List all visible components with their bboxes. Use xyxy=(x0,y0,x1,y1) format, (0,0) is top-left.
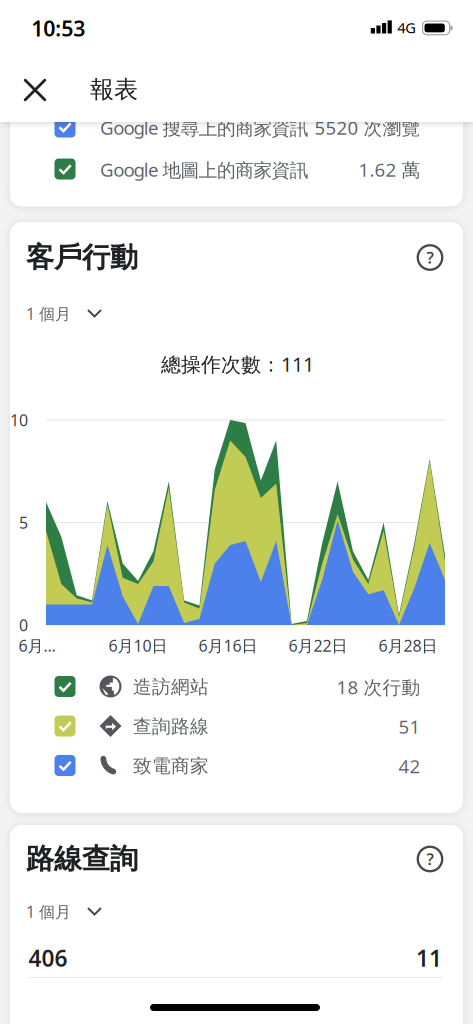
button[interactable]: 說明 xyxy=(415,242,445,272)
staticText: 6月... xyxy=(18,635,55,656)
button[interactable]: Google 地圖上的商家資訊 xyxy=(0,149,473,189)
staticText: 6月10日 xyxy=(108,635,167,656)
button[interactable]: 致電商家 xyxy=(0,745,473,785)
staticText: 4G xyxy=(397,18,416,37)
staticText: 10:53 xyxy=(31,14,85,42)
staticText: ? xyxy=(426,247,433,268)
staticText: 查詢路線 xyxy=(133,715,209,738)
button[interactable]: 選取期間 xyxy=(26,901,102,922)
button[interactable]: 說明 xyxy=(415,844,445,874)
button[interactable]: 關閉 xyxy=(20,75,50,105)
staticText: 5520 次瀏覽 xyxy=(314,115,420,140)
button[interactable]: 造訪網站 xyxy=(0,666,473,706)
staticText: 造訪網站 xyxy=(133,675,209,698)
staticText: 51 xyxy=(398,714,420,739)
staticText: 6月22日 xyxy=(288,635,347,656)
staticText: 6月28日 xyxy=(378,635,437,656)
button[interactable]: 查詢路線 xyxy=(0,706,473,746)
staticText: 報表 xyxy=(90,75,138,104)
staticText: 致電商家 xyxy=(133,754,209,777)
staticText: 5 xyxy=(19,512,28,533)
staticText: ? xyxy=(426,848,433,870)
staticText: 1 個月 xyxy=(26,303,71,324)
staticText: Google 地圖上的商家資訊 xyxy=(100,157,309,182)
staticText: 1 個月 xyxy=(26,901,71,922)
staticText: 10 xyxy=(10,409,28,431)
staticText: 6月16日 xyxy=(198,635,257,656)
staticText: Google 搜尋上的商家資訊 xyxy=(100,115,309,140)
staticText: 0 xyxy=(19,614,28,636)
button[interactable]: 選取期間 xyxy=(26,303,102,324)
staticText: 406 xyxy=(28,943,67,973)
staticText: 路線查詢 xyxy=(26,842,138,876)
button[interactable]: Google 搜尋上的商家資訊 xyxy=(0,107,473,147)
staticText: 1.62 萬 xyxy=(358,157,420,182)
staticText: 總操作次數：111 xyxy=(161,351,314,377)
staticText: 18 次行動 xyxy=(336,675,420,699)
staticText: 42 xyxy=(398,754,420,778)
staticText: 11 xyxy=(416,943,442,973)
staticText: 客戶行動 xyxy=(26,240,138,275)
